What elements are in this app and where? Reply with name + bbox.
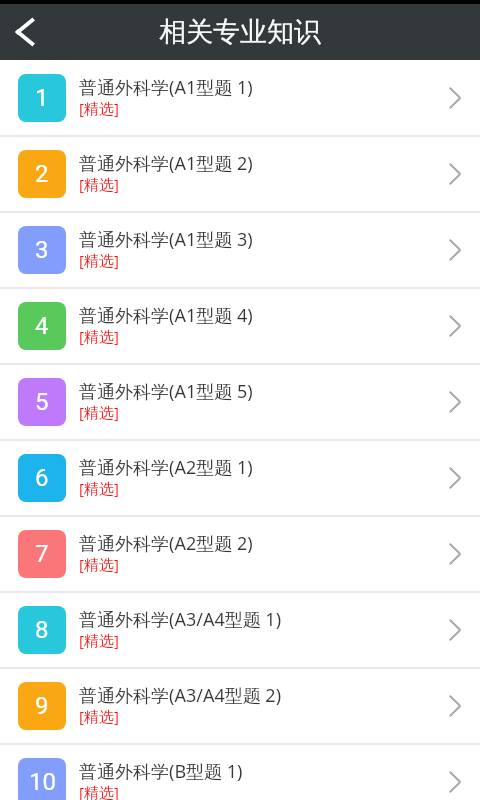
staticText: 9 [35, 692, 49, 720]
staticText: 普通外科学(A2型题 1) [79, 455, 253, 480]
staticText: 普通外科学(A1型题 3) [79, 227, 253, 252]
staticText: 普通外科学(A1型题 1) [79, 75, 253, 100]
button[interactable]: 10 [0, 745, 480, 800]
staticText: 普通外科学(A1型题 4) [79, 303, 253, 328]
staticText: 普通外科学(A3/A4型题 1) [79, 607, 282, 632]
staticText: 1 [35, 84, 49, 112]
staticText: 10 [29, 768, 56, 796]
staticText: [精选] [79, 174, 119, 194]
staticText: 相关专业知识 [159, 15, 321, 49]
button[interactable]: 8 [0, 593, 480, 667]
staticText: [精选] [79, 554, 119, 574]
button[interactable]: 9 [0, 669, 480, 743]
staticText: 5 [35, 388, 49, 416]
staticText: 普通外科学(A2型题 2) [79, 531, 253, 556]
staticText: 普通外科学(A3/A4型题 2) [79, 683, 282, 708]
staticText: [精选] [79, 326, 119, 346]
button[interactable]: 7 [0, 517, 480, 591]
staticText: 8 [35, 616, 49, 644]
staticText: 7 [35, 540, 49, 568]
button[interactable]: 5 [0, 365, 480, 439]
staticText: [精选] [79, 478, 119, 498]
button[interactable]: 4 [0, 289, 480, 363]
staticText: 6 [35, 464, 49, 492]
staticText: 普通外科学(A1型题 5) [79, 379, 253, 404]
staticText: 普通外科学(A1型题 2) [79, 151, 253, 176]
staticText: [精选] [79, 782, 119, 800]
staticText: [精选] [79, 402, 119, 422]
staticText: [精选] [79, 706, 119, 726]
button[interactable]: 3 [0, 213, 480, 287]
button[interactable]: 2 [0, 137, 480, 211]
staticText: 4 [35, 312, 49, 340]
button[interactable]: Back [0, 8, 48, 56]
button[interactable]: 6 [0, 441, 480, 515]
staticText: [精选] [79, 250, 119, 270]
staticText: [精选] [79, 630, 119, 650]
staticText: 普通外科学(B型题 1) [79, 759, 243, 784]
staticText: 3 [35, 236, 49, 264]
staticText: 2 [35, 160, 49, 188]
staticText: [精选] [79, 98, 119, 118]
button[interactable]: 1 [0, 61, 480, 135]
